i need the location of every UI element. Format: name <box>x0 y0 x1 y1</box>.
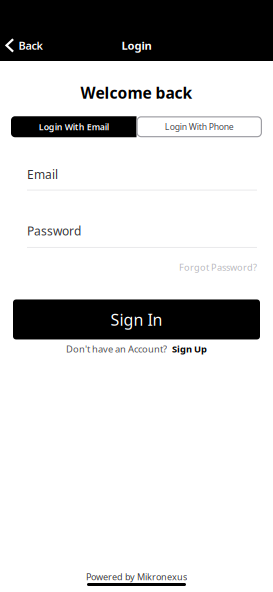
button[interactable]: Login With Email <box>11 116 136 137</box>
button[interactable]: Forgot Password? <box>179 261 257 273</box>
button[interactable]: Sign Up <box>172 342 207 355</box>
staticText: Login With Email <box>39 121 109 133</box>
staticText: Sign Up <box>172 342 207 355</box>
button[interactable]: Login With Phone <box>136 116 262 137</box>
staticText: Back <box>18 38 42 53</box>
staticText: Welcome back <box>80 82 192 103</box>
staticText: Password <box>27 223 81 239</box>
button[interactable]: Back <box>0 35 48 56</box>
staticText: Don't have an Account? <box>66 342 167 355</box>
staticText: Login <box>121 38 151 53</box>
staticText: Forgot Password? <box>179 261 257 273</box>
staticText: Powered by Mikronexus <box>86 571 187 583</box>
button[interactable]: Sign In <box>13 299 260 339</box>
staticText: Email <box>27 166 58 182</box>
staticText: Login With Phone <box>165 121 234 133</box>
staticText: Sign In <box>110 309 162 330</box>
